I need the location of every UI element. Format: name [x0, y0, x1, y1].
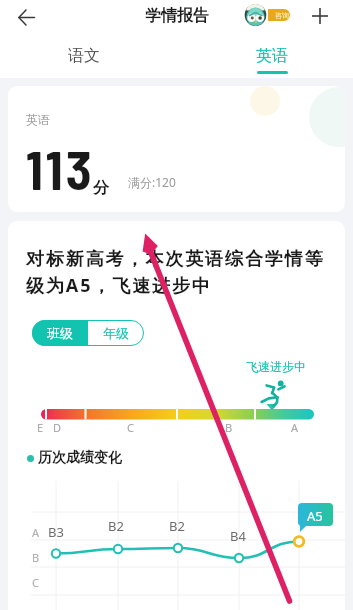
staticText: 对标新高考，本次英语综合学情等级为A5，飞速进步中	[26, 248, 328, 297]
staticText: B	[225, 420, 233, 435]
staticText: C	[32, 575, 39, 590]
staticText: 语文	[68, 46, 100, 66]
button[interactable]: 语文	[44, 33, 124, 78]
button[interactable]: 年级	[88, 320, 144, 346]
staticText: D	[53, 420, 62, 435]
staticText: 飞速进步中	[246, 359, 306, 374]
staticText: B2	[169, 517, 185, 535]
button[interactable]: Add	[306, 2, 334, 30]
staticText: C	[127, 420, 134, 435]
staticText: 113	[26, 137, 95, 201]
button[interactable]: Consult assistant	[244, 4, 292, 26]
staticText: 咨询	[275, 11, 289, 20]
staticText: A	[32, 525, 40, 540]
staticText: B4	[230, 527, 246, 545]
button[interactable]: 英语	[232, 33, 312, 78]
staticText: 满分:120	[128, 174, 176, 190]
staticText: B	[32, 550, 40, 565]
staticText: A5	[307, 507, 323, 525]
button[interactable]: 班级	[32, 320, 88, 346]
staticText: A	[291, 420, 299, 435]
button[interactable]: Back	[10, 1, 42, 33]
staticText: 历次成绩变化	[38, 449, 122, 467]
staticText: B3	[48, 523, 64, 541]
staticText: 分	[93, 178, 109, 198]
button[interactable]: 历次成绩变化	[27, 447, 147, 469]
staticText: 英语	[26, 112, 50, 127]
staticText: 班级	[47, 325, 73, 341]
staticText: E	[37, 420, 44, 435]
staticText: 年级	[103, 325, 129, 341]
staticText: B2	[108, 517, 124, 535]
staticText: 学情报告	[145, 6, 209, 26]
staticText: 英语	[256, 46, 288, 66]
